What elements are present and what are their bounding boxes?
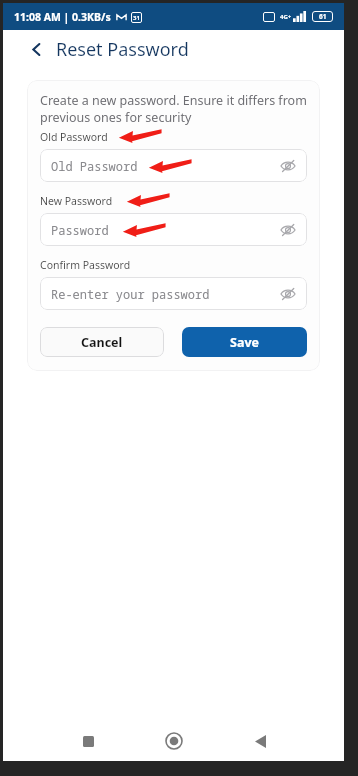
staticText: Re-enter your password <box>51 286 210 302</box>
button[interactable]: Password <box>40 213 307 246</box>
staticText: 61 <box>319 12 327 21</box>
staticText: Reset Password <box>56 37 189 62</box>
staticText: Create a new password. Ensure it differs… <box>40 92 307 125</box>
button[interactable]: Recent apps <box>66 721 110 761</box>
staticText: 4G+ <box>280 13 292 21</box>
button[interactable]: Old Password <box>40 149 307 182</box>
button[interactable]: Show password <box>278 156 298 176</box>
button[interactable]: Show password <box>278 284 298 304</box>
staticText: Confirm Password <box>40 258 131 272</box>
staticText: 31 <box>133 14 140 22</box>
button[interactable]: Cancel <box>40 327 164 357</box>
button[interactable]: Save <box>182 327 307 357</box>
button[interactable]: Show password <box>278 220 298 240</box>
button[interactable]: Back <box>238 721 282 761</box>
staticText: Cancel <box>81 334 123 351</box>
staticText: New Password <box>40 194 113 208</box>
button[interactable]: Re-enter your password <box>40 277 307 310</box>
button[interactable]: Back <box>25 38 47 60</box>
staticText: Password <box>51 222 109 238</box>
staticText: Old Password <box>51 158 138 174</box>
staticText: Old Password <box>40 130 108 144</box>
staticText: Save <box>230 334 259 351</box>
button[interactable]: Home <box>152 721 196 761</box>
staticText: 11:08 AM | 0.3KB/s <box>14 10 111 24</box>
